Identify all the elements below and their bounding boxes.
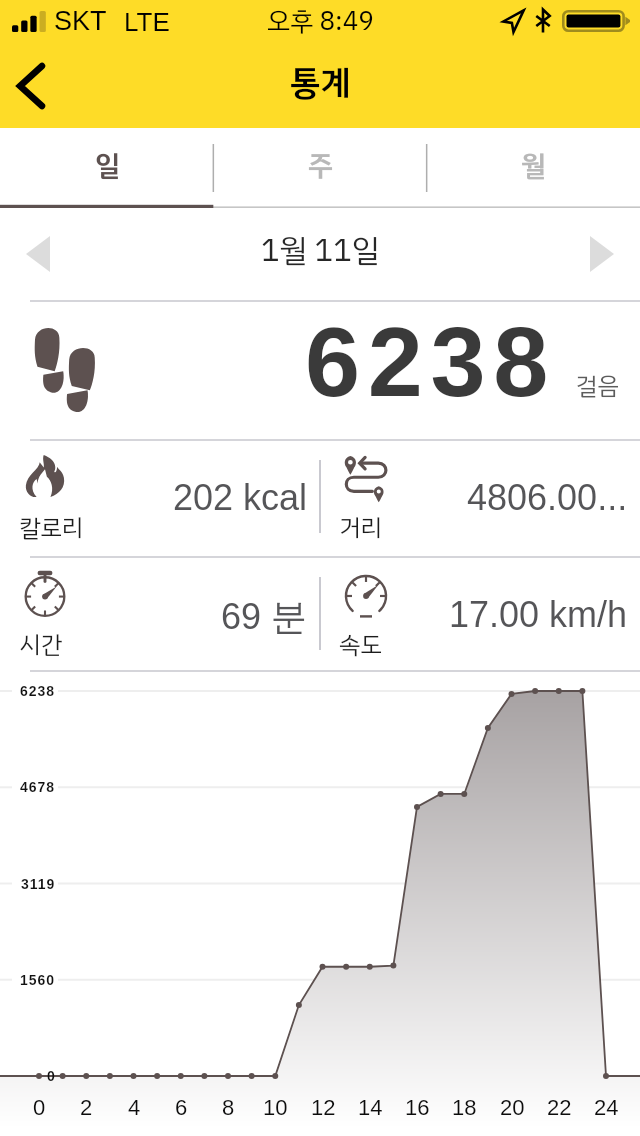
staticText: 69 분 — [221, 594, 308, 639]
staticText: 6238 — [20, 683, 56, 699]
staticText: 18 — [452, 1095, 477, 1120]
staticText: 12 — [311, 1095, 336, 1120]
staticText: 16 — [405, 1095, 430, 1120]
staticText: SKT — [54, 6, 107, 36]
staticText: 속도 — [339, 627, 382, 663]
button[interactable]: 거리 — [320, 439, 640, 556]
staticText: 시간 — [19, 627, 62, 663]
staticText: 칼로리 — [19, 510, 84, 546]
staticText: 1월 11일 — [261, 227, 380, 274]
button[interactable]: 주 — [214, 128, 427, 208]
staticText: 걸음 — [576, 368, 619, 404]
staticText: 2 — [80, 1095, 93, 1120]
button[interactable]: 시간 — [0, 556, 320, 673]
button[interactable]: 칼로리 — [0, 439, 320, 556]
button[interactable]: Previous day — [0, 208, 76, 300]
staticText: 일 — [95, 145, 120, 187]
button[interactable]: 속도 — [320, 556, 640, 673]
staticText: 4678 — [20, 779, 56, 795]
staticText: 0 — [33, 1095, 46, 1120]
staticText: 0 — [47, 1068, 56, 1084]
staticText: 20 — [500, 1095, 525, 1120]
button[interactable]: Back — [0, 44, 62, 128]
staticText: LTE — [124, 7, 170, 36]
staticText: 8 — [222, 1095, 235, 1120]
staticText: 6238 — [305, 306, 557, 417]
staticText: 4806.00... — [467, 477, 628, 517]
staticText: 4 — [128, 1095, 141, 1120]
staticText: 주 — [308, 145, 333, 187]
button[interactable]: 6238 — [0, 300, 640, 439]
staticText: 22 — [547, 1095, 572, 1120]
staticText: 17.00 km/h — [449, 594, 628, 634]
staticText: 거리 — [339, 510, 382, 546]
staticText: 202 kcal — [173, 477, 308, 517]
staticText: 24 — [594, 1095, 619, 1120]
staticText: 오후 8:49 — [267, 2, 374, 41]
button[interactable]: 일 — [0, 128, 214, 208]
staticText: 통계 — [290, 57, 351, 108]
staticText: 14 — [358, 1095, 383, 1120]
staticText: 3119 — [21, 876, 56, 892]
staticText: 1560 — [20, 972, 56, 988]
button[interactable]: Next day — [564, 208, 640, 300]
staticText: 6 — [175, 1095, 188, 1120]
button[interactable]: 월 — [427, 128, 640, 208]
staticText: 10 — [263, 1095, 288, 1120]
staticText: 월 — [521, 145, 546, 187]
